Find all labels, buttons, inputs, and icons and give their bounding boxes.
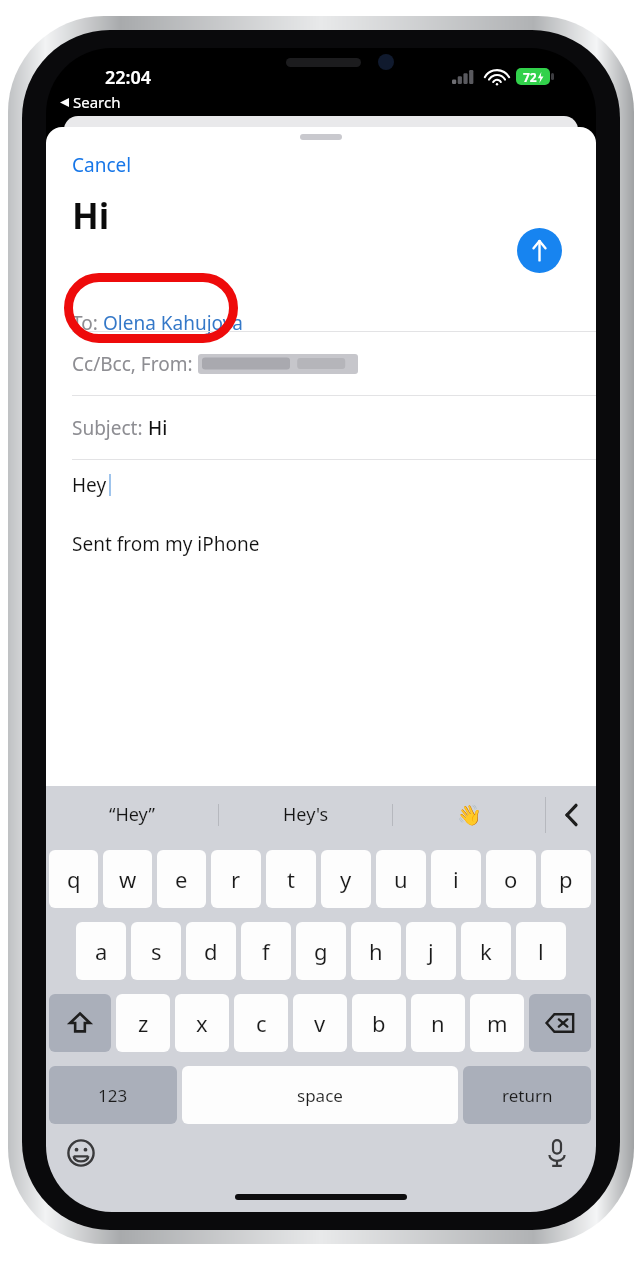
button[interactable]: l [516, 922, 566, 980]
button[interactable]: 👋 [393, 786, 545, 843]
staticText: 22:04 [105, 65, 152, 90]
staticText: c [256, 1008, 267, 1038]
staticText: n [431, 1008, 445, 1038]
staticText: l [538, 936, 544, 966]
staticText: p [559, 864, 573, 894]
button[interactable]: space [182, 1066, 458, 1124]
staticText: space [297, 1084, 343, 1107]
button[interactable]: n [411, 994, 465, 1052]
button[interactable]: a [76, 922, 126, 980]
button[interactable]: p [541, 850, 591, 908]
button[interactable]: Back [60, 92, 121, 112]
button[interactable]: w [103, 850, 152, 908]
staticText: 👋 [457, 803, 482, 826]
staticText: e [175, 864, 188, 894]
button[interactable]: r [211, 850, 261, 908]
button[interactable]: t [266, 850, 316, 908]
button[interactable]: z [116, 994, 170, 1052]
staticText: Cc/Bcc, From: [72, 351, 198, 377]
button[interactable]: y [321, 850, 371, 908]
staticText: Hey's [283, 802, 329, 827]
button[interactable]: f [241, 922, 291, 980]
staticText: f [262, 936, 270, 966]
button[interactable]: Subject: [46, 396, 596, 459]
button[interactable]: Previous [546, 786, 596, 843]
button[interactable]: u [376, 850, 426, 908]
button[interactable]: d [186, 922, 236, 980]
staticText: z [138, 1008, 149, 1038]
staticText: d [204, 936, 218, 966]
staticText: Cancel [72, 152, 132, 178]
staticText: k [480, 936, 492, 966]
staticText: Hi [148, 415, 168, 441]
button[interactable]: Dictation [540, 1136, 574, 1170]
staticText: u [394, 864, 408, 894]
staticText: i [453, 864, 459, 894]
button[interactable]: i [431, 850, 481, 908]
staticText: a [95, 936, 108, 966]
staticText: 72 [523, 69, 537, 85]
staticText: q [67, 864, 81, 894]
button[interactable]: j [406, 922, 456, 980]
staticText: o [504, 864, 518, 894]
button[interactable]: Cc/Bcc, From: [46, 332, 596, 395]
other: Back [60, 98, 69, 107]
button[interactable]: “Hey” [46, 786, 218, 843]
button[interactable]: 123 [49, 1066, 177, 1124]
button[interactable]: o [486, 850, 536, 908]
staticText: w [119, 864, 137, 894]
staticText: Sent from my iPhone [72, 531, 260, 557]
button[interactable]: c [234, 994, 288, 1052]
staticText: “Hey” [109, 802, 155, 827]
staticText: x [196, 1008, 208, 1038]
button[interactable]: Shift [49, 994, 111, 1052]
button[interactable]: x [175, 994, 229, 1052]
button[interactable]: To: [46, 291, 596, 355]
button[interactable]: Send [517, 228, 562, 273]
button[interactable]: Delete [529, 994, 591, 1052]
staticText: To: [72, 310, 103, 336]
button[interactable]: h [351, 922, 401, 980]
button[interactable]: m [470, 994, 524, 1052]
staticText: s [151, 936, 162, 966]
staticText: v [314, 1008, 326, 1038]
staticText: r [231, 864, 241, 894]
button[interactable]: return [463, 1066, 591, 1124]
staticText: j [428, 936, 434, 966]
staticText: 123 [98, 1084, 128, 1107]
button[interactable]: Emoji [64, 1136, 98, 1170]
staticText: Hi [72, 192, 110, 240]
staticText: g [314, 936, 328, 966]
staticText: return [502, 1084, 553, 1107]
staticText: m [487, 1008, 508, 1038]
button[interactable]: s [131, 922, 181, 980]
staticText: Olena Kahujova [103, 310, 244, 336]
staticText: Search [73, 92, 121, 112]
staticText: y [340, 864, 352, 894]
button[interactable]: v [293, 994, 347, 1052]
staticText: Hey [72, 472, 107, 498]
staticText: b [372, 1008, 386, 1038]
button[interactable]: q [49, 850, 98, 908]
staticText: h [369, 936, 383, 966]
button[interactable]: e [157, 850, 206, 908]
button[interactable]: k [461, 922, 511, 980]
button[interactable]: g [296, 922, 346, 980]
staticText: Subject: [72, 415, 148, 441]
button[interactable]: Hey's [219, 786, 392, 843]
button[interactable]: b [352, 994, 406, 1052]
button[interactable]: Cancel [66, 149, 138, 181]
staticText: t [287, 864, 295, 894]
